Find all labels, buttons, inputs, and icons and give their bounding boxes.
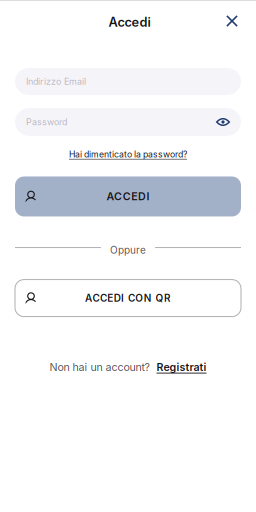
button[interactable]: ACCEDI [15,176,241,216]
staticText: Registrati [156,361,206,373]
staticText: ACCEDI [106,190,149,203]
staticText: Hai dimenticato la password? [69,149,187,159]
button[interactable]: Registrati [156,361,206,373]
button[interactable]: Hai dimenticato la password? [69,149,187,159]
staticText: Accedi [108,14,150,30]
staticText: Oppure [110,244,146,256]
staticText: Password [26,117,67,127]
button[interactable]: ACCEDI CON QR [15,280,241,317]
staticText: Indirizzo Email [26,76,86,87]
staticText: Non hai un account? [49,361,149,373]
button[interactable]: Mostra password [213,112,233,132]
staticText: ACCEDI CON QR [85,292,171,304]
button[interactable]: Chiudi [217,6,247,36]
